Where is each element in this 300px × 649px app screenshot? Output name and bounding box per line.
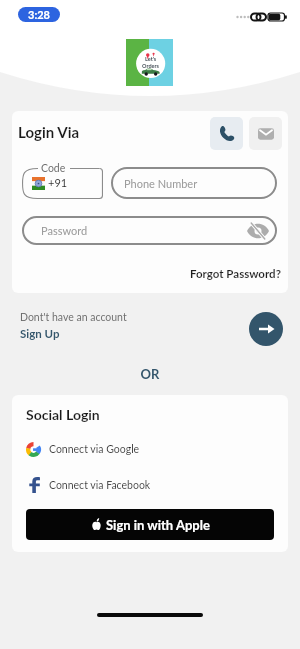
button[interactable]: Connect via Google: [26, 440, 226, 458]
staticText: Forgot Password?: [190, 267, 281, 281]
button[interactable]: Continue: [249, 312, 283, 346]
staticText: Dont't have an account: [20, 311, 127, 324]
staticText: Phone Number: [124, 177, 198, 190]
staticText: 3:28: [28, 8, 50, 21]
staticText: Connect via Facebook: [49, 479, 151, 492]
staticText: Password: [41, 224, 88, 237]
staticText: Let's: [145, 56, 157, 63]
staticText: Connect via Google: [49, 443, 140, 456]
button[interactable]: Forgot Password?: [190, 267, 281, 281]
button[interactable]: Show password: [246, 219, 270, 243]
button[interactable]: Sign in with Apple: [26, 509, 274, 540]
staticText: Sign Up: [20, 327, 60, 341]
button[interactable]: Password: [22, 216, 277, 245]
button[interactable]: Sign Up: [20, 327, 60, 341]
button[interactable]: Login with phone number: [210, 117, 243, 150]
staticText: Sign in with Apple: [106, 517, 210, 533]
staticText: Code: [41, 162, 66, 175]
staticText: Login Via: [18, 123, 80, 141]
staticText: OR: [0, 366, 300, 382]
button[interactable]: Phone Number: [111, 167, 277, 199]
staticText: Orders: [142, 63, 160, 70]
staticText: +91: [48, 176, 68, 189]
button[interactable]: Login with email: [249, 117, 282, 150]
staticText: Social Login: [26, 406, 100, 423]
button[interactable]: Connect via Facebook: [26, 476, 226, 494]
